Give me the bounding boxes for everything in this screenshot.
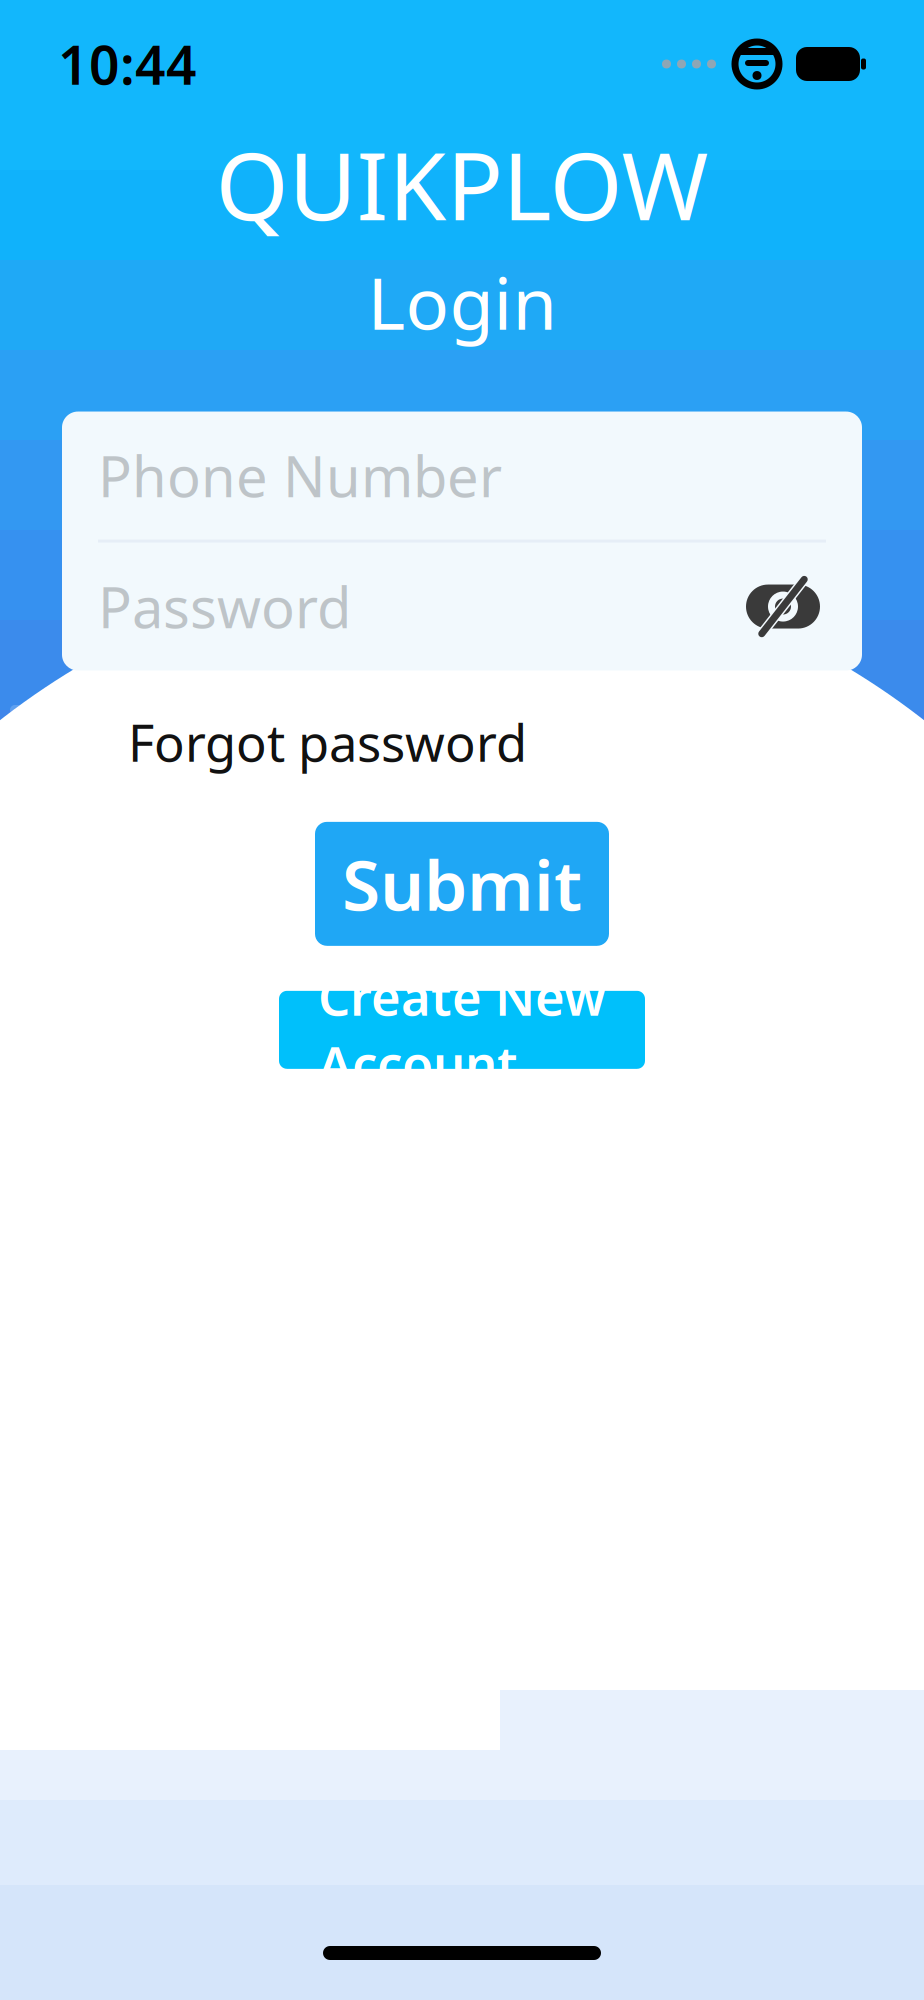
staticText: 10:44	[58, 29, 197, 99]
staticText: Create New Account	[318, 963, 606, 1097]
staticText: Login	[367, 254, 556, 349]
button[interactable]: Password	[62, 543, 862, 671]
staticText: Phone Number	[98, 438, 502, 513]
button[interactable]: Show password	[740, 576, 826, 638]
button[interactable]: Create New Account	[279, 991, 645, 1069]
staticText: Password	[98, 569, 351, 644]
button[interactable]: Forgot password	[128, 709, 527, 776]
staticText: Submit	[342, 838, 582, 930]
staticText: Forgot password	[128, 709, 527, 776]
staticText: QUIKPLOW	[215, 122, 708, 246]
button[interactable]: Phone Number	[62, 412, 862, 540]
button[interactable]: Submit	[315, 822, 609, 946]
